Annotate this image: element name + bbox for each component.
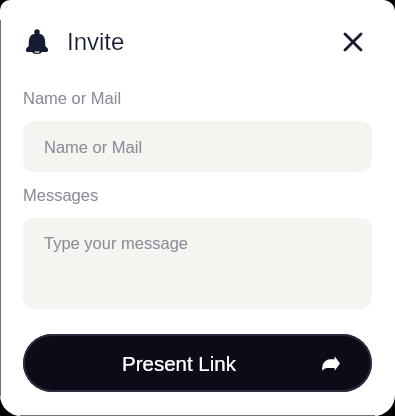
button[interactable]: Name or Mail xyxy=(23,121,372,172)
staticText: Present Link xyxy=(122,352,236,375)
button[interactable]: Present Link xyxy=(23,334,372,392)
button[interactable]: Close xyxy=(337,26,369,58)
button[interactable]: Type your message xyxy=(23,218,372,309)
staticText: Name or Mail xyxy=(44,138,143,156)
staticText: Invite xyxy=(67,28,125,55)
staticText: Messages xyxy=(23,186,99,204)
staticText: Type your message xyxy=(44,234,188,252)
staticText: Name or Mail xyxy=(23,89,122,107)
